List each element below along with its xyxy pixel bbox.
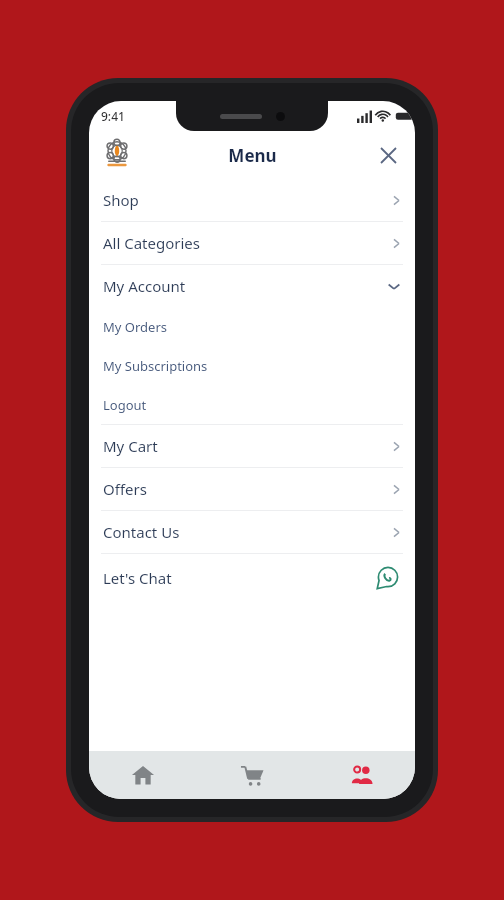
button[interactable]: Logout [89,385,415,424]
staticText: Offers [103,479,147,499]
button[interactable]: My Cart [89,425,415,467]
other: Chat on WhatsApp [375,565,401,591]
button[interactable]: Close [373,140,403,170]
staticText: My Orders [103,318,167,336]
button[interactable]: Shop [89,179,415,221]
button[interactable]: Offers [89,468,415,510]
staticText: Shop [103,190,139,210]
button[interactable]: Home [89,751,197,799]
staticText: My Account [103,276,186,296]
staticText: All Categories [103,233,201,253]
button[interactable]: My Account [89,265,415,307]
staticText: Contact Us [103,522,180,542]
button[interactable]: All Categories [89,222,415,264]
button[interactable]: My Orders [89,307,415,346]
staticText: Logout [103,396,147,414]
button[interactable]: Contact Us [89,511,415,553]
staticText: My Subscriptions [103,357,208,375]
button[interactable]: Account [306,751,415,799]
staticText: My Cart [103,436,158,456]
button[interactable]: My Subscriptions [89,346,415,385]
button[interactable]: Let's Chat [89,554,415,602]
staticText: Let's Chat [103,568,172,588]
staticText: 9:41 [101,108,125,124]
staticText: Menu [228,144,277,167]
button[interactable]: Cart [197,751,306,799]
button[interactable]: Brand logo [101,139,133,171]
